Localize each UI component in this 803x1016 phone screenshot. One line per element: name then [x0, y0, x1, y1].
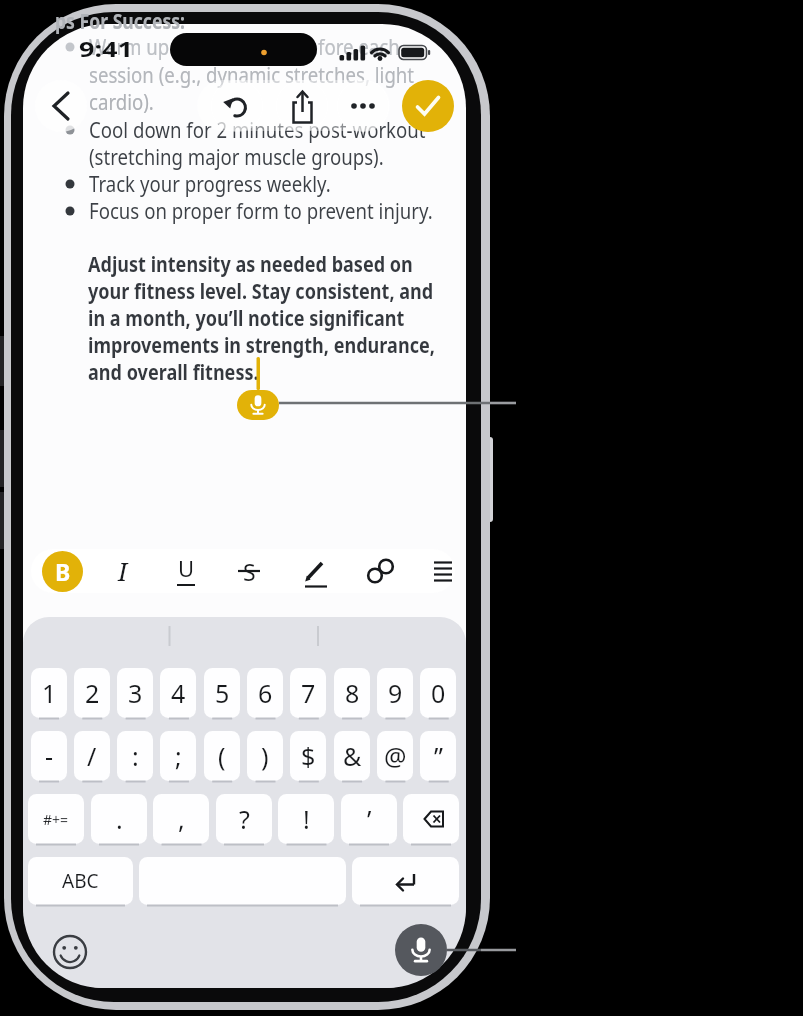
- button[interactable]: [430, 552, 456, 590]
- button[interactable]: 8: [334, 668, 370, 718]
- button[interactable]: [364, 552, 398, 590]
- staticText: Warm up for 5 minutes before each: [89, 32, 400, 61]
- button[interactable]: [139, 857, 346, 905]
- button[interactable]: -: [31, 731, 67, 781]
- button[interactable]: /: [74, 731, 110, 781]
- staticText: $: [301, 739, 316, 773]
- button[interactable]: !: [278, 794, 334, 844]
- staticText: 8: [345, 676, 360, 710]
- button[interactable]: [352, 857, 459, 905]
- staticText: and overall fitness.: [88, 357, 259, 386]
- staticText: ’: [367, 802, 372, 836]
- staticText: S: [243, 556, 256, 587]
- button[interactable]: 4: [160, 668, 196, 718]
- button[interactable]: 0: [420, 668, 456, 718]
- staticText: 0: [431, 676, 446, 710]
- button[interactable]: 7: [290, 668, 326, 718]
- button[interactable]: (: [204, 731, 240, 781]
- button[interactable]: I: [108, 552, 138, 590]
- staticText: 3: [128, 676, 143, 710]
- button[interactable]: [35, 80, 87, 132]
- staticText: 9: [388, 676, 403, 710]
- staticText: ;: [175, 739, 182, 773]
- staticText: 7: [301, 676, 316, 710]
- staticText: &: [343, 739, 362, 773]
- button[interactable]: ”: [420, 731, 456, 781]
- button[interactable]: B: [42, 551, 83, 592]
- staticText: ?: [239, 802, 250, 836]
- staticText: #+=: [43, 810, 69, 829]
- button[interactable]: [300, 552, 332, 590]
- button[interactable]: #+=: [28, 794, 84, 844]
- button[interactable]: [337, 80, 389, 132]
- staticText: 4: [171, 676, 186, 710]
- staticText: ,: [178, 802, 185, 836]
- button[interactable]: @: [377, 731, 413, 781]
- button[interactable]: [211, 80, 263, 132]
- button[interactable]: ,: [153, 794, 209, 844]
- staticText: B: [55, 556, 71, 587]
- button[interactable]: &: [334, 731, 370, 781]
- staticText: improvements in strength, endurance,: [88, 330, 435, 359]
- staticText: ABC: [62, 868, 99, 894]
- button[interactable]: [52, 934, 88, 970]
- button[interactable]: [276, 80, 328, 132]
- staticText: /: [87, 739, 97, 773]
- staticText: 9:41: [79, 35, 133, 63]
- staticText: (: [218, 739, 226, 773]
- staticText: in a month, you’ll notice significant: [88, 303, 405, 332]
- staticText: 2: [85, 676, 100, 710]
- button[interactable]: S: [234, 552, 264, 590]
- button[interactable]: ;: [160, 731, 196, 781]
- staticText: ”: [434, 739, 443, 773]
- staticText: Cool down for 2 minutes post-workout: [89, 115, 426, 144]
- button[interactable]: ABC: [28, 857, 133, 905]
- staticText: :: [132, 739, 139, 773]
- button[interactable]: 6: [247, 668, 283, 718]
- staticText: Focus on proper form to prevent injury.: [89, 196, 433, 225]
- button[interactable]: .: [91, 794, 147, 844]
- staticText: -: [45, 739, 54, 773]
- button[interactable]: ): [247, 731, 283, 781]
- button[interactable]: [395, 924, 447, 976]
- staticText: .: [116, 802, 123, 836]
- staticText: your fitness level. Stay consistent, and: [88, 276, 433, 305]
- button[interactable]: [237, 390, 279, 420]
- button[interactable]: [402, 80, 454, 132]
- staticText: Track your progress weekly.: [89, 169, 331, 198]
- staticText: U: [178, 553, 195, 583]
- staticText: session (e.g., dynamic stretches, light: [89, 60, 415, 89]
- staticText: I: [118, 554, 128, 588]
- staticText: ): [261, 739, 269, 773]
- staticText: 5: [215, 676, 230, 710]
- button[interactable]: 5: [204, 668, 240, 718]
- staticText: 1: [42, 676, 57, 710]
- staticText: cardio).: [89, 87, 154, 116]
- staticText: @: [384, 739, 407, 773]
- button[interactable]: 9: [377, 668, 413, 718]
- staticText: !: [303, 802, 310, 836]
- button[interactable]: [403, 794, 459, 844]
- button[interactable]: 2: [74, 668, 110, 718]
- button[interactable]: 3: [117, 668, 153, 718]
- staticText: 6: [258, 676, 273, 710]
- button[interactable]: ’: [341, 794, 397, 844]
- staticText: ps For Success:: [55, 5, 185, 35]
- button[interactable]: :: [117, 731, 153, 781]
- button[interactable]: U: [171, 552, 201, 590]
- staticText: (stretching major muscle groups).: [89, 142, 384, 171]
- button[interactable]: ?: [216, 794, 272, 844]
- button[interactable]: 1: [31, 668, 67, 718]
- staticText: Adjust intensity as needed based on: [88, 249, 413, 278]
- button[interactable]: $: [290, 731, 326, 781]
